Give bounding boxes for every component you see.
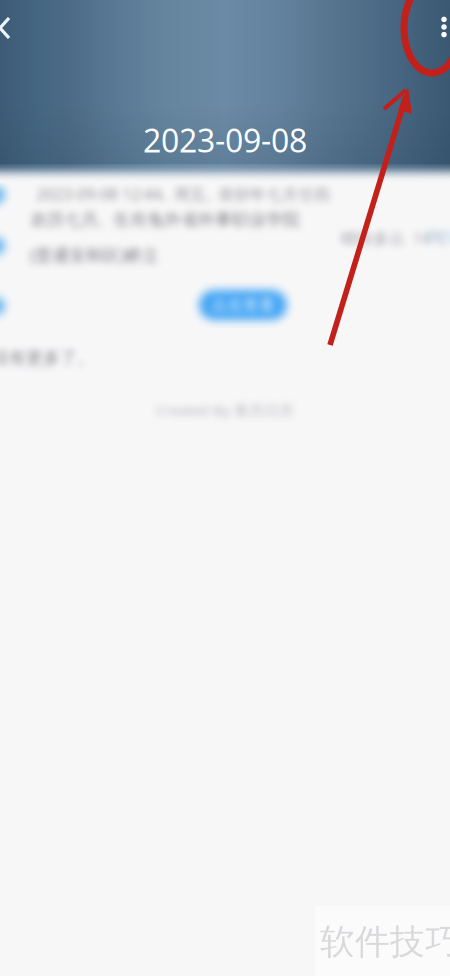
button[interactable]: Back (0, 0, 24, 56)
button[interactable]: More options (424, 3, 450, 51)
staticText: 软件技巧 (320, 920, 450, 964)
staticText: 2023-09-08 (143, 118, 307, 162)
